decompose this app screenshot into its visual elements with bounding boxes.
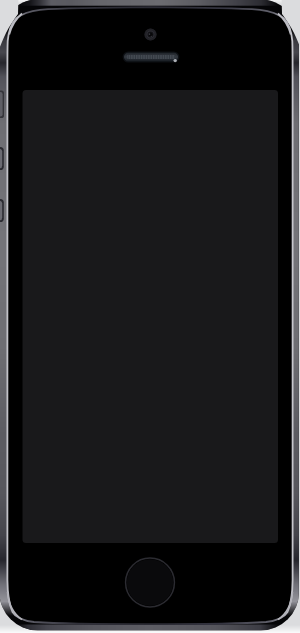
button[interactable]: Smartphone product photo (0, 0, 300, 633)
